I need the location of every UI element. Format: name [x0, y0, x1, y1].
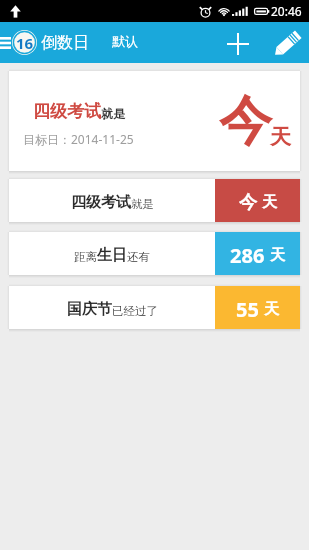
button[interactable]: 距离: [9, 232, 300, 275]
staticText: 就是: [131, 197, 154, 211]
staticText: 286: [230, 242, 265, 269]
button[interactable]: 16: [12, 30, 37, 55]
staticText: 天: [264, 300, 279, 319]
button[interactable]: 四级考试: [9, 71, 300, 171]
staticText: 国庆节: [67, 300, 112, 319]
staticText: 目标日：2014-11-25: [23, 131, 134, 147]
staticText: 默认: [112, 33, 138, 49]
staticText: 天: [270, 246, 285, 265]
button[interactable]: Add countdown: [217, 23, 258, 64]
button[interactable]: Open navigation drawer: [0, 22, 11, 63]
staticText: 四级考试: [33, 101, 101, 122]
button[interactable]: 默认: [112, 20, 138, 61]
staticText: 天: [262, 193, 277, 212]
staticText: 今: [239, 191, 257, 214]
staticText: 就是: [101, 106, 125, 121]
staticText: 四级考试: [71, 193, 131, 212]
button[interactable]: 国庆节: [9, 286, 300, 329]
staticText: 55: [236, 296, 259, 323]
staticText: 20:46: [271, 3, 302, 19]
staticText: 今: [219, 88, 272, 155]
button[interactable]: Edit: [269, 23, 305, 64]
staticText: 距离: [74, 250, 97, 264]
staticText: 16: [16, 33, 34, 53]
staticText: 天: [270, 124, 291, 150]
button[interactable]: 四级考试: [9, 179, 300, 222]
staticText: 生日: [97, 246, 127, 265]
staticText: 已经过了: [112, 304, 158, 318]
staticText: 倒数日: [41, 33, 89, 53]
staticText: 还有: [127, 250, 150, 264]
